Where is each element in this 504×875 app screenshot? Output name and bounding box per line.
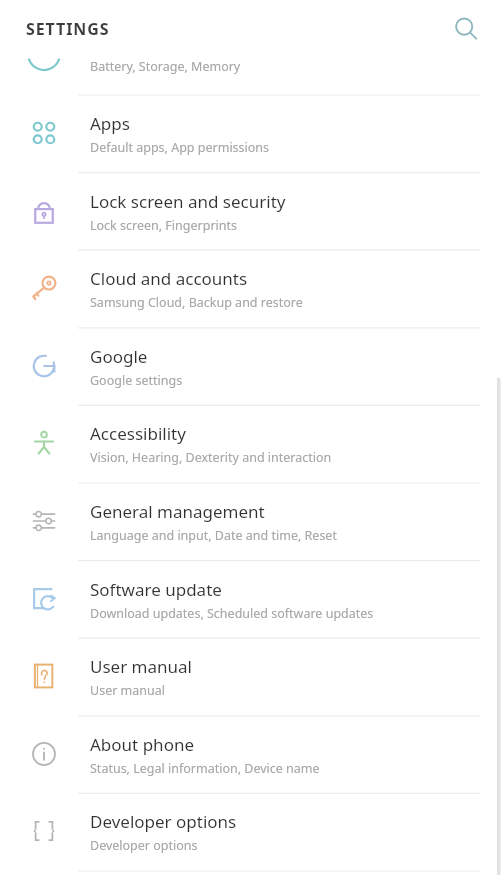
staticText: General management [90, 500, 265, 523]
button[interactable]: General management [0, 483, 504, 561]
staticText: Cloud and accounts [90, 267, 248, 290]
staticText: Samsung Cloud, Backup and restore [90, 294, 303, 311]
staticText: Apps [90, 112, 130, 135]
button[interactable]: Google [0, 328, 504, 406]
staticText: Software update [90, 578, 222, 601]
staticText: Battery, Storage, Memory [90, 58, 241, 75]
button[interactable]: Lock screen and security [0, 173, 504, 251]
button[interactable]: Search [442, 5, 490, 53]
staticText: User manual [90, 655, 192, 678]
staticText: SETTINGS [26, 18, 110, 40]
button[interactable]: Developer options [0, 793, 504, 871]
button[interactable]: User manual [0, 638, 504, 716]
button[interactable]: Software update [0, 561, 504, 639]
button[interactable]: Apps [0, 95, 504, 173]
staticText: Developer options [90, 837, 198, 854]
staticText: Google settings [90, 372, 183, 389]
button[interactable]: Cloud and accounts [0, 250, 504, 328]
button[interactable]: Accessibility [0, 405, 504, 483]
staticText: Lock screen and security [90, 190, 286, 213]
staticText: About phone [90, 733, 195, 756]
staticText: Accessibility [90, 422, 186, 445]
button[interactable]: About phone [0, 716, 504, 794]
staticText: Vision, Hearing, Dexterity and interacti… [90, 449, 332, 466]
staticText: Google [90, 345, 148, 368]
staticText: Default apps, App permissions [90, 139, 270, 156]
staticText: User manual [90, 682, 165, 699]
staticText: Language and input, Date and time, Reset [90, 527, 337, 544]
staticText: Status, Legal information, Device name [90, 760, 320, 777]
staticText: Developer options [90, 810, 237, 833]
staticText: Download updates, Scheduled software upd… [90, 605, 374, 622]
staticText: Lock screen, Fingerprints [90, 217, 238, 234]
